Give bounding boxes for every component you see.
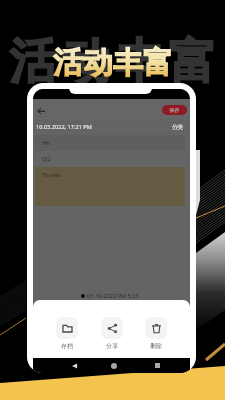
button[interactable]: 保存 bbox=[162, 105, 187, 115]
staticText: 存档 bbox=[61, 342, 73, 350]
button[interactable]: 存档 bbox=[56, 317, 78, 350]
staticText: 分享 bbox=[106, 342, 118, 350]
staticText: 分类 bbox=[172, 124, 184, 131]
staticText: 10.03.2022, 17:21 PM bbox=[36, 123, 92, 131]
button[interactable]: Back bbox=[72, 363, 78, 369]
button[interactable]: 分享 bbox=[101, 317, 123, 350]
staticText: 活动丰富 bbox=[53, 44, 173, 82]
staticText: 活动丰富 bbox=[9, 32, 222, 92]
staticText: Hh bbox=[42, 139, 50, 147]
button[interactable]: 删除 bbox=[145, 317, 167, 350]
button[interactable]: Home bbox=[111, 363, 117, 369]
staticText: Thanks bbox=[42, 171, 61, 179]
staticText: 保存 bbox=[169, 107, 180, 114]
staticText: 03-10-2022 PM 5:23 bbox=[87, 292, 139, 300]
button[interactable]: Back bbox=[34, 103, 47, 116]
staticText: 删除 bbox=[150, 342, 162, 350]
staticText: QQ bbox=[42, 155, 51, 163]
